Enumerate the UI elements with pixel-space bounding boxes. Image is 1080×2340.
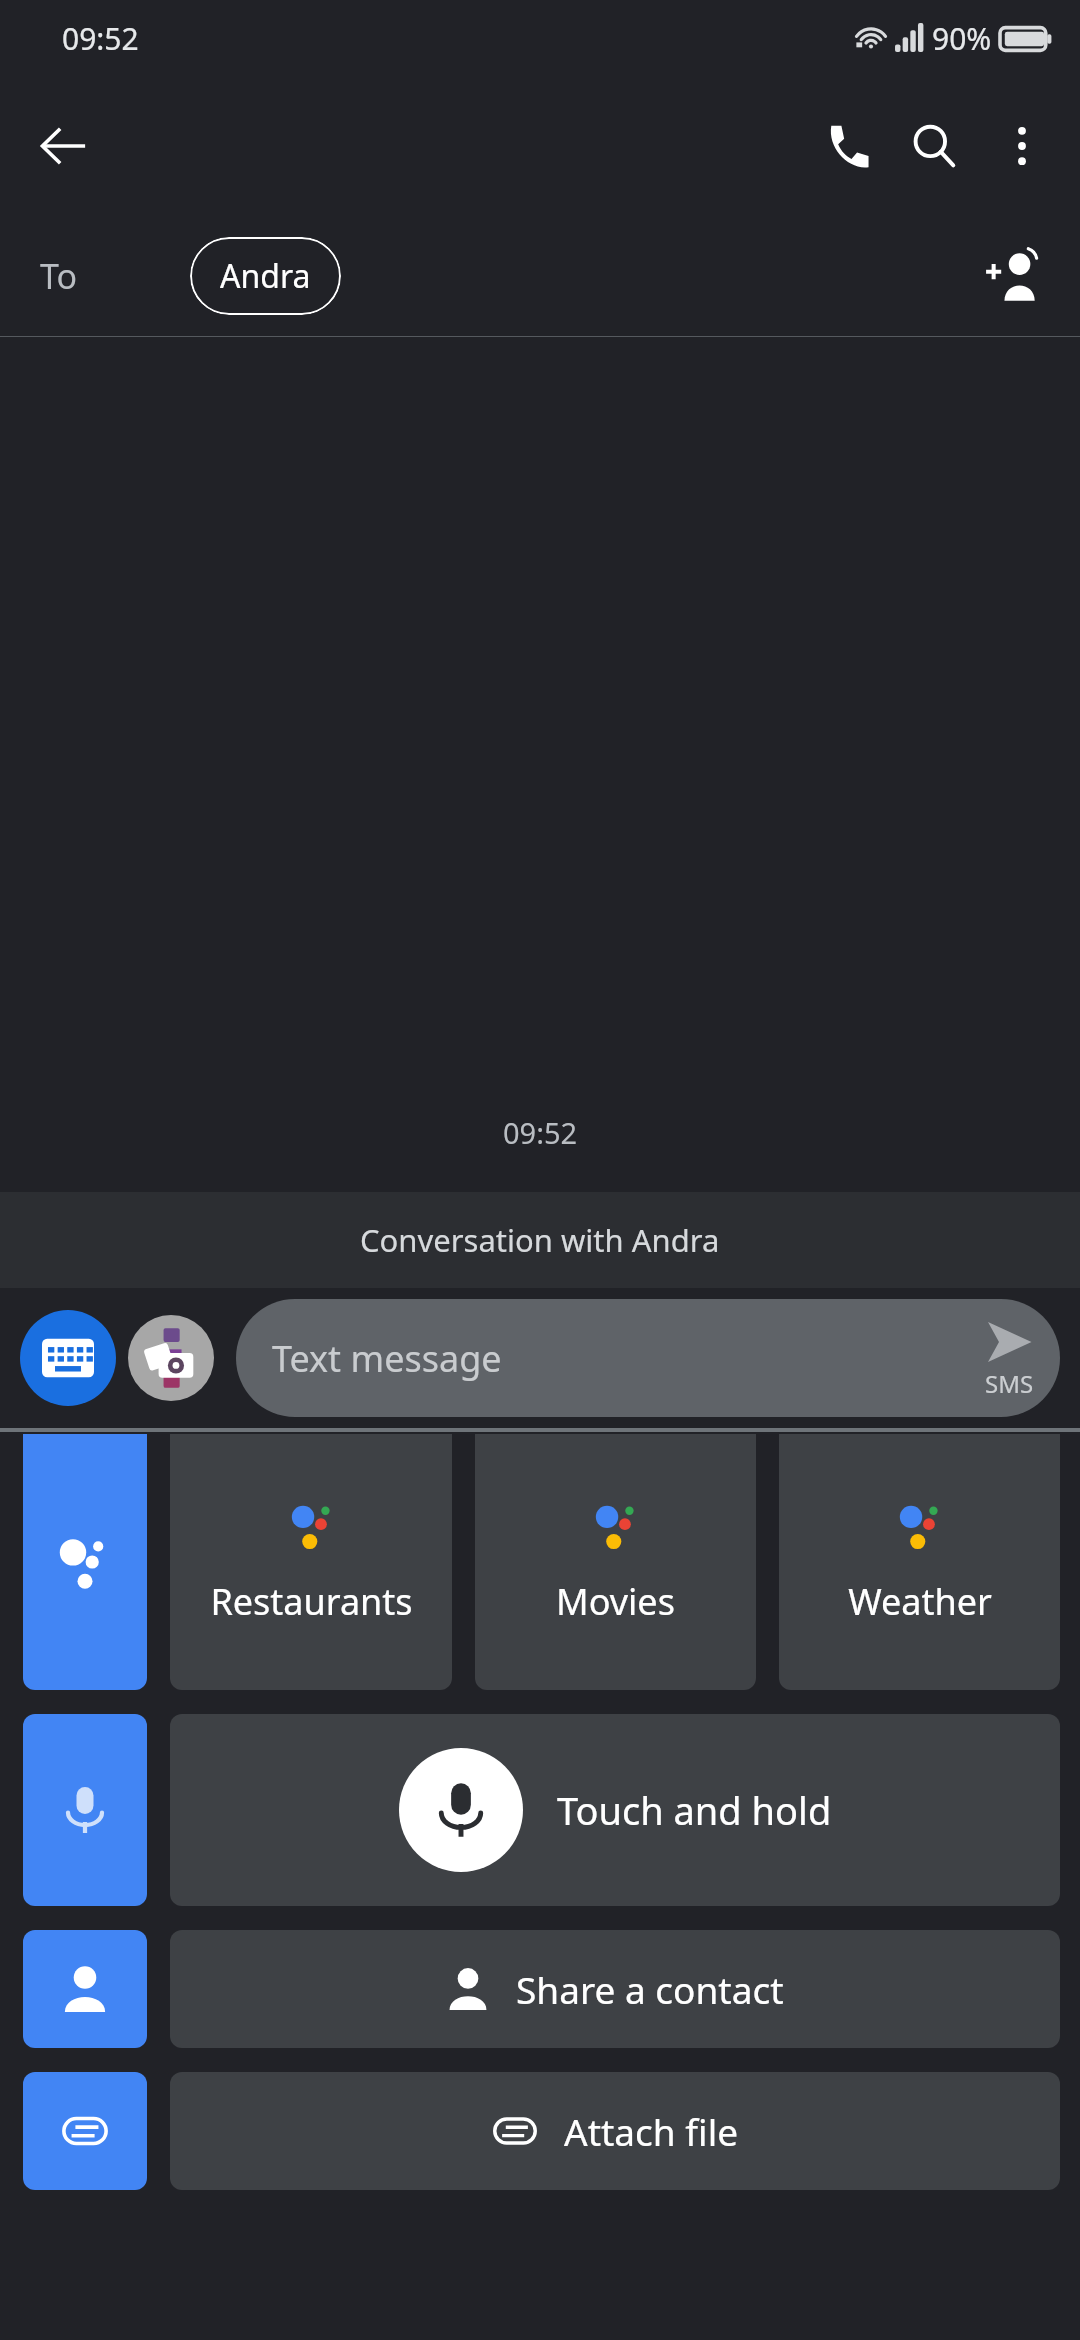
button[interactable]: Movies [475, 1434, 756, 1690]
button[interactable]: Andra [190, 237, 341, 315]
staticText: 09:52 [503, 1113, 578, 1152]
staticText: SMS [985, 1367, 1034, 1400]
staticText: Weather [848, 1577, 992, 1626]
button[interactable]: Share a contact [170, 1930, 1060, 2048]
staticText: To [40, 253, 78, 299]
staticText: Conversation with Andra [360, 1219, 720, 1261]
staticText: Share a contact [516, 1964, 784, 2014]
button[interactable]: Restaurants [170, 1434, 452, 1690]
button[interactable]: Add recipient [968, 232, 1056, 320]
staticText: Text message [272, 1334, 502, 1383]
button[interactable]: Touch and hold [170, 1714, 1060, 1906]
button[interactable]: Text message [236, 1299, 1060, 1417]
button[interactable]: Weather [779, 1434, 1060, 1690]
button[interactable]: Attach file [170, 2072, 1060, 2190]
staticText: 90% [932, 18, 992, 59]
button[interactable]: More options [978, 102, 1066, 190]
staticText: 09:52 [62, 18, 139, 59]
button[interactable]: Share a contact [23, 1930, 147, 2048]
button[interactable]: Attach file [23, 2072, 147, 2190]
button[interactable]: Call [802, 102, 890, 190]
button[interactable]: Back [26, 108, 102, 184]
staticText: Andra [220, 254, 311, 298]
button[interactable]: Keyboard [20, 1310, 116, 1406]
staticText: Restaurants [210, 1577, 413, 1626]
staticText: Movies [556, 1577, 675, 1626]
staticText: Attach file [564, 2106, 739, 2156]
button[interactable]: Camera and gallery [128, 1315, 214, 1401]
button[interactable]: Google Assistant [23, 1434, 147, 1690]
button[interactable]: Search [890, 102, 978, 190]
button[interactable]: Voice input [23, 1714, 147, 1906]
staticText: Touch and hold [557, 1784, 832, 1836]
